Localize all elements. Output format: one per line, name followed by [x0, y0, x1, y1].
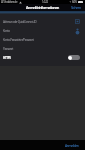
other: Scan QR code	[75, 19, 80, 24]
staticText: 14:22	[42, 0, 48, 4]
staticText: 84%	[72, 0, 77, 4]
staticText: Passwort	[3, 47, 14, 51]
staticText: Sichern	[71, 5, 81, 10]
staticText: Konto	[3, 29, 10, 33]
staticText: Anmeldeinformationen	[26, 5, 59, 10]
other: Choose account	[75, 28, 80, 33]
staticText: Adresse oder QuickConnect-ID	[3, 20, 37, 24]
staticText: Anmelden	[65, 143, 79, 147]
button[interactable]: HTTPS	[0, 53, 85, 62]
button[interactable]: Anmelden	[59, 143, 85, 147]
staticText: HTTPS	[3, 56, 11, 60]
button[interactable]: Sichern	[67, 5, 85, 10]
button[interactable]: HTTPS toggle	[68, 55, 80, 60]
staticText: Konto-Passwörter/Passwort	[3, 38, 34, 42]
button[interactable]: Passwort	[0, 44, 85, 53]
button[interactable]: Konto-Passwörter/Passwort	[0, 35, 85, 44]
button[interactable]: Adresse oder QuickConnect-ID	[0, 17, 85, 26]
button[interactable]: Konto	[0, 26, 85, 35]
staticText: AT Vodafone.de	[1, 0, 18, 4]
